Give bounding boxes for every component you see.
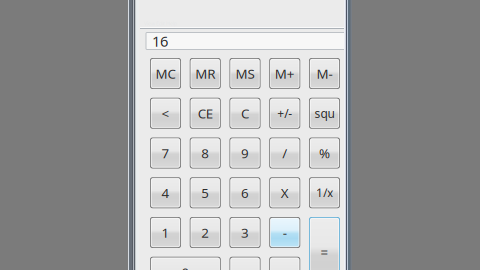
button[interactable]: 5 [190,177,221,208]
button[interactable]: 1/x [309,177,340,208]
button[interactable]: < [150,98,181,129]
button[interactable]: MR [190,58,221,89]
button[interactable]: % [309,137,340,168]
button[interactable]: squ [309,98,340,129]
button[interactable]: 9 [229,137,260,168]
staticText: 5 [201,184,209,202]
button[interactable]: 8 [190,137,221,168]
staticText: 4 [161,184,169,202]
button[interactable]: MS [229,58,260,89]
button[interactable]: - [269,217,300,248]
staticText: - [283,224,287,241]
staticText: MR [195,65,215,82]
staticText: +/- [277,105,292,121]
button[interactable]: 4 [150,177,181,208]
staticText: 8 [201,144,209,162]
staticText: CE [198,104,213,122]
staticText: MS [235,65,254,82]
staticText: 6 [241,184,249,202]
staticText: 7 [161,144,169,162]
staticText: squ [314,105,334,121]
staticText: 16 [152,31,168,51]
button[interactable]: / [269,137,300,168]
staticText: C [241,104,249,122]
staticText: 2 [201,224,209,241]
staticText: M+ [275,65,295,82]
staticText: % [319,144,330,162]
staticText: = [320,243,328,261]
staticText: < [161,104,169,122]
button[interactable]: M+ [269,58,300,89]
staticText: 0 [181,263,189,270]
button[interactable]: CE [190,98,221,129]
button[interactable]: 1 [150,217,181,248]
staticText: 9 [241,144,249,162]
button[interactable]: 7 [150,137,181,168]
button[interactable]: 6 [229,177,260,208]
button[interactable]: +/- [269,98,300,129]
staticText: X [281,184,289,202]
button[interactable]: MC [150,58,181,89]
staticText: 1 [161,224,169,241]
button[interactable]: 0 [150,257,221,270]
staticText: 1/x [316,185,333,201]
staticText: M- [316,65,332,82]
button[interactable]: X [269,177,300,208]
button[interactable]: + [269,257,300,270]
staticText: MC [155,65,175,82]
button[interactable]: M- [309,58,340,89]
button[interactable]: 3 [229,217,260,248]
staticText: 3 [241,224,249,241]
staticText: / [282,144,287,162]
button[interactable]: = [309,217,340,270]
button[interactable]: C [229,98,260,129]
button[interactable]: 2 [190,217,221,248]
button[interactable]: . [229,257,260,270]
